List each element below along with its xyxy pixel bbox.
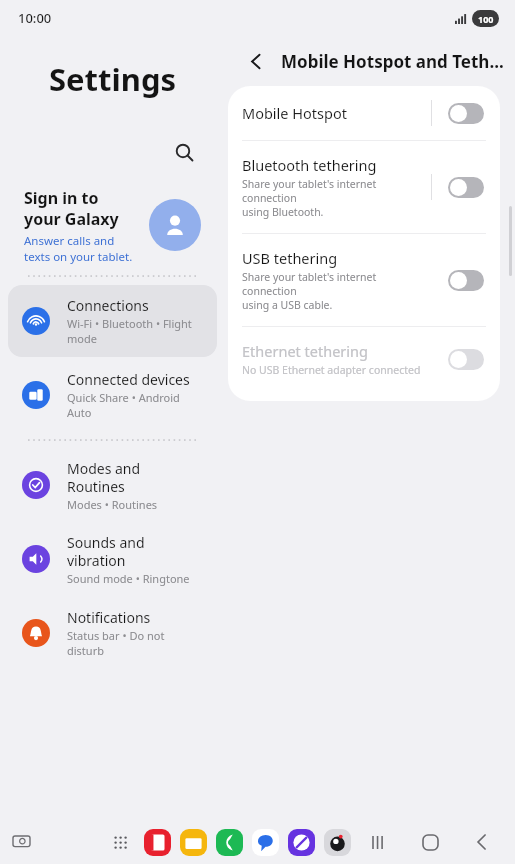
button[interactable]: App [252, 829, 279, 856]
staticText: 100 [478, 13, 494, 25]
staticText: Sound mode • Ringtone [67, 571, 190, 586]
staticText: Modes • Routines [67, 497, 158, 512]
button[interactable]: Ethernet tethering [228, 327, 500, 391]
button[interactable]: Recents [361, 825, 395, 859]
staticText: Quick Share • Android Auto [67, 390, 180, 420]
button[interactable]: Connected devices [8, 359, 217, 431]
button[interactable]: Apps [108, 830, 134, 856]
button[interactable]: App [180, 829, 207, 856]
button[interactable]: Mobile Hotspot [228, 86, 500, 140]
staticText: Settings [49, 58, 177, 100]
staticText: Sounds and vibration [67, 533, 145, 570]
button[interactable]: USB tethering [228, 234, 500, 326]
staticText: Connected devices [67, 370, 190, 389]
staticText: No USB Ethernet adapter connected [242, 363, 421, 377]
staticText: Bluetooth tethering [242, 155, 377, 175]
staticText: Ethernet tethering [242, 341, 368, 361]
button[interactable]: Clipboard [6, 827, 36, 857]
staticText: Answer calls and texts on your tablet. [24, 233, 133, 264]
button[interactable]: Back [237, 42, 275, 80]
staticText: USB tethering [242, 248, 338, 268]
button[interactable]: Ethernet tethering [448, 349, 484, 370]
button[interactable]: Sounds and vibration [8, 523, 217, 595]
button[interactable]: Bluetooth tethering [228, 141, 500, 233]
staticText: Share your tablet's internet connection … [242, 270, 431, 312]
staticText: Status bar • Do not disturb [67, 628, 165, 658]
button[interactable]: Sign in to your Galaxy [0, 182, 225, 268]
button[interactable]: App [144, 829, 171, 856]
button[interactable]: Modes and Routines [8, 449, 217, 521]
staticText: Share your tablet's internet connection … [242, 177, 431, 219]
staticText: Notifications [67, 608, 151, 627]
button[interactable]: Home [413, 825, 447, 859]
button[interactable]: Bluetooth tethering [448, 177, 484, 198]
staticText: Modes and Routines [67, 459, 141, 496]
button[interactable]: USB tethering [448, 270, 484, 291]
staticText: 10:00 [18, 9, 52, 27]
staticText: Connections [67, 296, 149, 315]
button[interactable]: App [216, 829, 243, 856]
button[interactable]: Notifications [8, 597, 217, 669]
button[interactable]: Back [465, 825, 499, 859]
staticText: Wi-Fi • Bluetooth • Flight mode [67, 316, 192, 346]
button[interactable]: Search [165, 133, 203, 171]
staticText: Mobile Hotspot [242, 103, 347, 123]
button[interactable]: Connections [8, 285, 217, 357]
button[interactable]: App [324, 829, 351, 856]
button[interactable]: App [288, 829, 315, 856]
staticText: Mobile Hotspot and Teth... [281, 50, 504, 73]
button[interactable]: Mobile Hotspot [448, 103, 484, 124]
staticText: Sign in to your Galaxy [24, 187, 119, 230]
